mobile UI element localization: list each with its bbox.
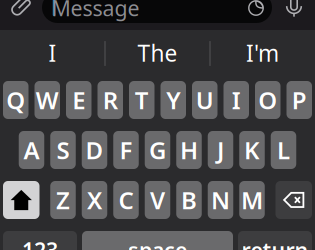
button[interactable]: C bbox=[113, 181, 139, 219]
button[interactable]: N bbox=[208, 181, 233, 219]
button[interactable]: G bbox=[145, 131, 170, 169]
staticText: 123 bbox=[22, 236, 58, 250]
staticText: space bbox=[128, 236, 187, 250]
staticText: K bbox=[244, 134, 260, 166]
staticText: E bbox=[72, 84, 85, 116]
staticText: I bbox=[232, 84, 241, 116]
button[interactable]: P bbox=[286, 81, 312, 119]
button[interactable]: Y bbox=[160, 81, 186, 119]
staticText: X bbox=[87, 184, 102, 216]
button[interactable]: Dictate bbox=[276, 0, 312, 23]
staticText: I bbox=[48, 38, 56, 68]
button[interactable]: The bbox=[105, 31, 209, 75]
staticText: The bbox=[137, 38, 177, 68]
staticText: W bbox=[36, 84, 59, 116]
staticText: V bbox=[150, 184, 165, 216]
button[interactable]: 123 bbox=[3, 231, 77, 250]
staticText: F bbox=[119, 134, 132, 166]
staticText: Message bbox=[51, 0, 139, 22]
button[interactable]: A bbox=[19, 131, 44, 169]
staticText: G bbox=[149, 134, 166, 166]
button[interactable]: X bbox=[82, 181, 107, 219]
staticText: P bbox=[292, 84, 307, 116]
staticText: R bbox=[103, 84, 118, 116]
staticText: J bbox=[217, 134, 224, 166]
staticText: I'm bbox=[246, 38, 279, 68]
button[interactable]: T bbox=[129, 81, 154, 119]
button[interactable]: I bbox=[0, 31, 104, 75]
button[interactable]: L bbox=[271, 131, 296, 169]
staticText: S bbox=[56, 134, 69, 166]
button[interactable]: D bbox=[82, 131, 107, 169]
staticText: L bbox=[277, 134, 290, 166]
button[interactable]: O bbox=[255, 81, 280, 119]
button[interactable]: Sticker bbox=[248, 0, 264, 16]
button[interactable]: J bbox=[208, 131, 233, 169]
button[interactable]: S bbox=[50, 131, 76, 169]
staticText: A bbox=[23, 134, 39, 166]
button[interactable]: Q bbox=[3, 81, 28, 119]
button[interactable]: I bbox=[223, 81, 249, 119]
button[interactable]: H bbox=[176, 131, 202, 169]
staticText: M bbox=[241, 184, 263, 216]
button[interactable]: B bbox=[176, 181, 202, 219]
button[interactable]: K bbox=[239, 131, 265, 169]
staticText: H bbox=[180, 134, 198, 166]
staticText: Q bbox=[6, 84, 25, 116]
button[interactable]: V bbox=[145, 181, 170, 219]
button[interactable]: Z bbox=[50, 181, 76, 219]
button[interactable]: return bbox=[238, 231, 312, 250]
button[interactable]: M bbox=[239, 181, 265, 219]
button[interactable]: R bbox=[97, 81, 123, 119]
staticText: N bbox=[211, 184, 230, 216]
button[interactable]: F bbox=[113, 131, 139, 169]
staticText: O bbox=[258, 84, 277, 116]
button[interactable]: U bbox=[192, 81, 217, 119]
staticText: C bbox=[118, 184, 133, 216]
button[interactable]: Attach bbox=[1, 0, 39, 24]
button[interactable]: E bbox=[66, 81, 91, 119]
staticText: D bbox=[85, 134, 103, 166]
staticText: T bbox=[135, 84, 149, 116]
button[interactable]: Shift bbox=[3, 181, 39, 219]
staticText: Z bbox=[56, 184, 70, 216]
button[interactable]: Delete bbox=[275, 181, 312, 219]
staticText: B bbox=[181, 184, 197, 216]
button[interactable]: W bbox=[34, 81, 60, 119]
staticText: return bbox=[241, 236, 308, 250]
staticText: U bbox=[196, 84, 214, 116]
button[interactable]: space bbox=[82, 231, 233, 250]
button[interactable]: I'm bbox=[210, 31, 314, 75]
staticText: Y bbox=[166, 84, 180, 116]
